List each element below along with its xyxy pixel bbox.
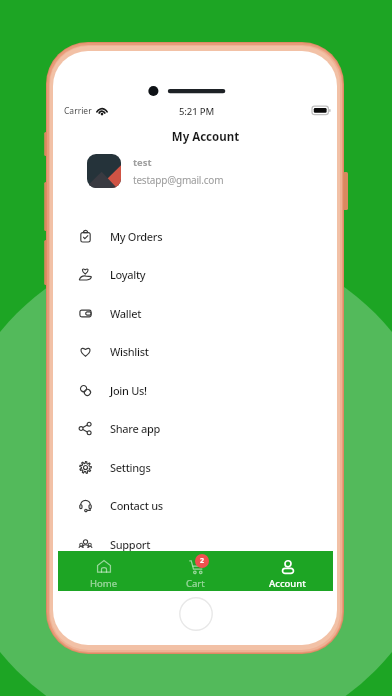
button[interactable]: Support [53,525,337,563]
button[interactable]: Share app [53,409,337,447]
staticText: Carrier [64,105,92,117]
staticText: test [133,156,152,169]
staticText: Contact us [110,498,163,513]
staticText: Share app [110,421,161,436]
staticText: 5:21 PM [179,105,215,118]
staticText: 2 [200,556,205,566]
staticText: testapp@gmail.com [133,173,224,187]
button[interactable]: Join Us! [53,371,337,409]
staticText: Join Us! [110,383,147,398]
button[interactable]: Wallet [53,294,337,332]
staticText: My Account [161,129,250,145]
staticText: My Orders [110,229,163,244]
staticText: Home [90,577,118,590]
staticText: Settings [110,460,151,475]
staticText: Wishlist [110,344,149,359]
button[interactable]: Home [58,551,149,591]
staticText: Loyalty [110,267,146,282]
staticText: Account [269,577,306,590]
button[interactable]: Loyalty [53,255,337,293]
button[interactable]: Settings [53,448,337,486]
button[interactable]: My Orders [53,217,337,255]
button[interactable]: Wishlist [53,332,337,370]
button[interactable]: Account [241,551,333,591]
staticText: Support [110,537,151,552]
staticText: Wallet [110,306,142,321]
button[interactable]: Cart [149,551,241,591]
button[interactable]: Contact us [53,486,337,524]
staticText: Cart [186,577,205,590]
